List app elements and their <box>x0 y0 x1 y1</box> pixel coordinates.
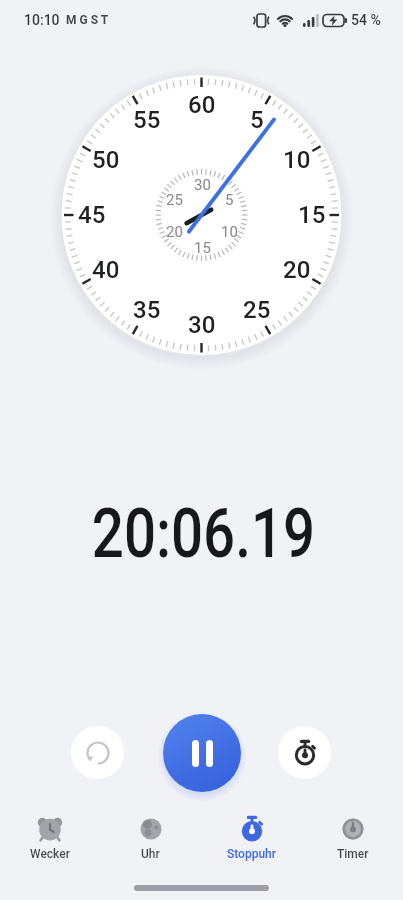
staticText: Stoppuhr <box>227 847 276 861</box>
staticText: 45 <box>78 201 106 229</box>
staticText: 5 <box>250 106 264 134</box>
staticText: 20 <box>283 256 311 284</box>
staticText: M G S T <box>66 13 109 27</box>
staticText: Timer <box>337 847 369 861</box>
staticText: 10 <box>221 223 238 239</box>
staticText: 5 <box>225 191 234 207</box>
staticText: 35 <box>133 296 161 324</box>
button[interactable] <box>278 726 331 779</box>
staticText: 40 <box>92 256 120 284</box>
button[interactable]: Uhr <box>100 810 201 866</box>
staticText: 20 <box>166 223 183 239</box>
staticText: 30 <box>194 176 211 192</box>
staticText: 30 <box>188 311 216 339</box>
button[interactable]: Wecker <box>0 810 100 866</box>
staticText: 20:06.19 <box>92 494 315 570</box>
staticText: Wecker <box>30 847 70 861</box>
staticText: 54 % <box>351 12 381 28</box>
button[interactable]: Timer <box>302 810 403 866</box>
staticText: 15 <box>194 239 211 255</box>
staticText: 60 <box>188 91 216 119</box>
staticText: 10 <box>283 146 311 174</box>
staticText: 25 <box>166 191 183 207</box>
staticText: 15 <box>298 201 326 229</box>
staticText: 10:10 <box>24 12 60 28</box>
button[interactable]: Stoppuhr <box>201 810 302 866</box>
staticText: 50 <box>92 146 120 174</box>
button[interactable] <box>71 726 124 779</box>
staticText: Uhr <box>141 847 160 861</box>
button[interactable] <box>163 714 241 792</box>
staticText: 25 <box>243 296 271 324</box>
staticText: 55 <box>133 106 161 134</box>
